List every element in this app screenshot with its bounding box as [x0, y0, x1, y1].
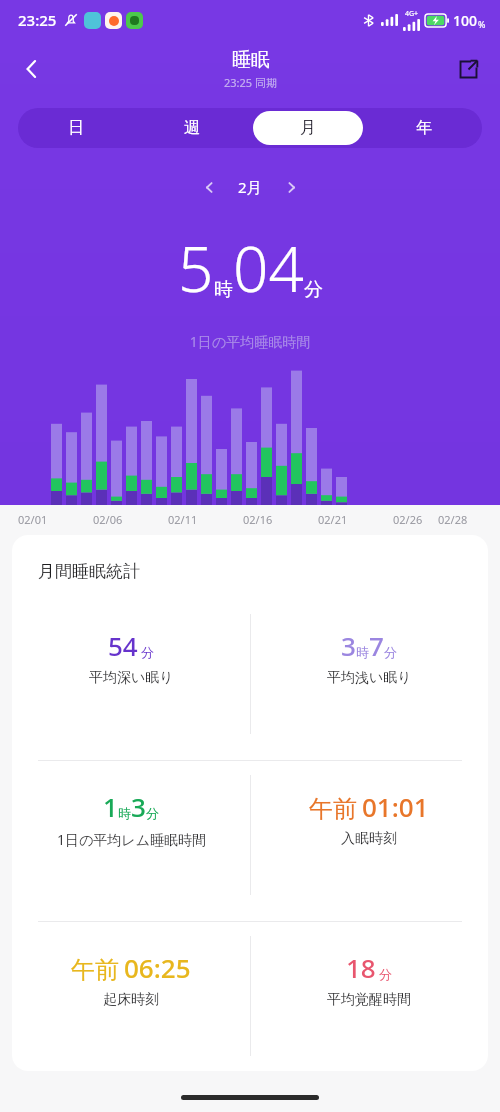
button[interactable]: 年: [369, 111, 479, 145]
button[interactable]: 午前: [250, 761, 488, 921]
staticText: 年: [416, 118, 432, 138]
button[interactable]: 午前: [12, 922, 250, 1071]
staticText: 02/21: [318, 512, 348, 527]
button[interactable]: 54: [12, 600, 250, 760]
staticText: 午前: [71, 955, 119, 985]
staticText: 分: [384, 644, 397, 660]
staticText: 日: [68, 118, 84, 138]
button[interactable]: 3: [250, 600, 488, 760]
staticText: 02/26: [393, 512, 423, 527]
staticText: 54: [108, 628, 138, 663]
staticText: 3: [341, 628, 356, 663]
staticText: %: [478, 18, 486, 30]
staticText: 分: [379, 966, 392, 982]
staticText: 1日の平均レム睡眠時間: [57, 830, 206, 849]
staticText: 平均深い眠り: [89, 669, 174, 687]
staticText: 分: [146, 805, 159, 821]
staticText: 02/01: [18, 512, 48, 527]
staticText: 午前: [309, 794, 357, 824]
staticText: 100: [453, 11, 478, 30]
staticText: 1: [103, 789, 118, 824]
staticText: 週: [184, 118, 200, 138]
button[interactable]: 週: [137, 111, 247, 145]
staticText: 時: [356, 644, 369, 660]
staticText: 4G+: [405, 9, 419, 19]
staticText: 平均覚醒時間: [327, 991, 411, 1009]
staticText: 02/11: [168, 512, 198, 527]
button[interactable]: 日: [21, 111, 131, 145]
staticText: 時: [214, 278, 233, 302]
staticText: 23:25 同期: [224, 75, 277, 90]
staticText: 06:25: [124, 950, 191, 985]
staticText: 02/28: [438, 512, 468, 527]
button[interactable]: Next month: [276, 172, 306, 202]
button[interactable]: Share: [446, 47, 490, 91]
button[interactable]: 月: [253, 111, 363, 145]
staticText: 分: [304, 278, 323, 302]
staticText: 時: [118, 805, 131, 821]
staticText: 18: [346, 950, 376, 985]
staticText: 5: [178, 226, 214, 310]
staticText: 23:25: [18, 10, 57, 30]
staticText: 02/16: [243, 512, 273, 527]
staticText: 1日の平均睡眠時間: [0, 332, 500, 351]
button[interactable]: 1: [12, 761, 250, 921]
staticText: 睡眠: [232, 48, 270, 72]
staticText: 3: [131, 789, 146, 824]
staticText: 月: [300, 118, 316, 138]
staticText: 分: [141, 644, 154, 660]
staticText: 2月: [238, 177, 262, 197]
staticText: 01:01: [362, 789, 429, 824]
staticText: 7: [369, 628, 384, 663]
staticText: 月間睡眠統計: [38, 561, 140, 582]
staticText: 平均浅い眠り: [327, 669, 412, 687]
staticText: 入眠時刻: [341, 830, 397, 848]
button[interactable]: Previous month: [194, 172, 224, 202]
button[interactable]: 18: [250, 922, 488, 1071]
staticText: 02/06: [93, 512, 123, 527]
staticText: 起床時刻: [103, 991, 159, 1009]
staticText: 04: [233, 226, 304, 310]
button[interactable]: Back: [8, 45, 56, 93]
